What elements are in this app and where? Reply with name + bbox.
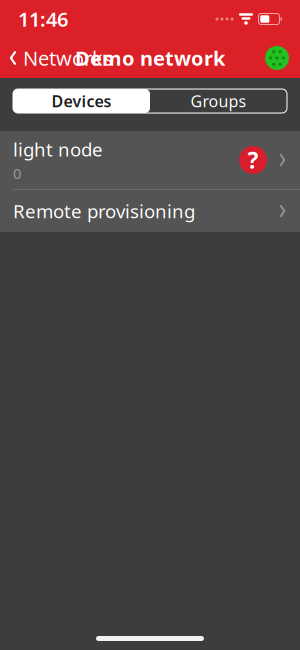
button[interactable]: Networks [0, 39, 113, 77]
staticText: Groups [190, 90, 246, 112]
staticText: Networks [23, 45, 113, 71]
staticText: light node [13, 137, 103, 162]
button[interactable]: Network settings [264, 41, 300, 75]
staticText: Remote provisioning [13, 199, 195, 223]
staticText: Devices [51, 90, 111, 112]
button[interactable]: Devices [13, 89, 150, 113]
button[interactable]: light node [0, 131, 300, 189]
staticText: Demo network [75, 45, 225, 71]
staticText: 11:46 [18, 6, 68, 32]
button[interactable]: Remote provisioning [0, 190, 300, 232]
staticText: 0 [13, 164, 21, 183]
button[interactable]: Groups [150, 89, 287, 113]
staticText: ? [247, 145, 258, 175]
